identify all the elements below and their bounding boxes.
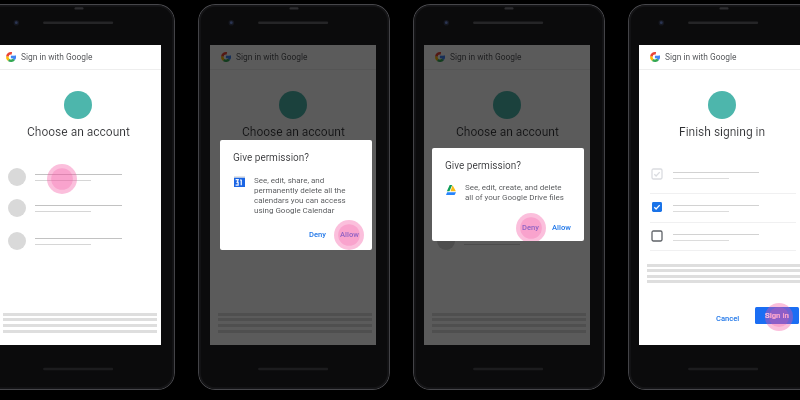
button[interactable] [424, 161, 590, 192]
button[interactable] [210, 192, 376, 223]
button[interactable] [639, 197, 800, 216]
button[interactable] [639, 226, 800, 245]
button[interactable]: Sign in with Google [210, 45, 376, 69]
staticText: Sign in with Google [450, 52, 522, 62]
button[interactable] [210, 225, 376, 256]
button[interactable] [210, 161, 376, 192]
button[interactable]: Sign in [755, 307, 799, 324]
button[interactable]: Allow [336, 227, 363, 242]
staticText: Sign in with Google [236, 52, 308, 62]
staticText: Deny [522, 223, 539, 232]
button[interactable]: Cancel [712, 311, 744, 326]
button[interactable] [0, 192, 161, 223]
button[interactable]: Allow [548, 220, 575, 235]
staticText: Choose an account [242, 125, 345, 139]
staticText: Allow [552, 223, 571, 232]
staticText: See, edit, share, and permanently delete… [254, 176, 346, 215]
button[interactable]: Sign in with Google [639, 45, 800, 69]
staticText: Sign in with Google [665, 52, 737, 62]
button[interactable]: Sign in with Google [424, 45, 590, 69]
button[interactable] [424, 192, 590, 223]
button[interactable] [424, 225, 590, 256]
staticText: Choose an account [27, 125, 130, 139]
staticText: Give permission? [445, 160, 522, 172]
staticText: See, edit, create, and delete all of you… [465, 183, 564, 202]
staticText: Deny [309, 230, 326, 239]
button[interactable]: Deny [518, 220, 543, 235]
button[interactable] [0, 161, 161, 192]
staticText: Choose an account [456, 125, 559, 139]
staticText: Sign in with Google [21, 52, 93, 62]
staticText: Allow [340, 230, 359, 239]
staticText: Cancel [716, 314, 740, 323]
staticText: Finish signing in [679, 125, 766, 139]
button[interactable] [0, 225, 161, 256]
staticText: Sign in [765, 311, 789, 320]
button[interactable]: Deny [305, 227, 330, 242]
staticText: Give permission? [233, 152, 310, 164]
button[interactable]: Sign in with Google [0, 45, 161, 69]
button[interactable] [639, 164, 800, 183]
